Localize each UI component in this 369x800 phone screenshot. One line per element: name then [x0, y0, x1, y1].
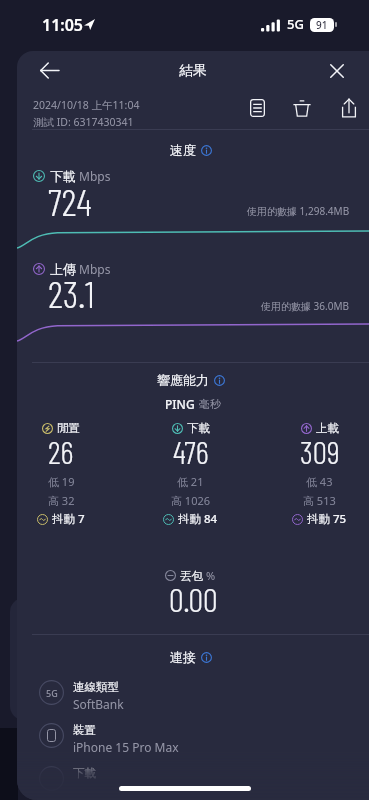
staticText: 高 32 [48, 493, 75, 508]
staticText: Mbps [79, 168, 111, 184]
staticText: 5G [46, 687, 58, 699]
staticText: 下載 [50, 168, 76, 184]
staticText: 476 [173, 432, 209, 470]
button[interactable]: 5G [39, 679, 369, 717]
staticText: 309 [300, 432, 340, 470]
button[interactable]: 裝置 [39, 722, 369, 760]
staticText: 抖動 75 [307, 511, 347, 527]
staticText: 結果 [179, 62, 207, 80]
staticText: 測試 ID: 6317430341 [33, 115, 134, 129]
staticText: 連接 [170, 649, 196, 665]
staticText: 724 [48, 178, 92, 224]
staticText: 低 21 [177, 474, 204, 489]
staticText: 裝置 [73, 723, 96, 737]
button[interactable]: Share [338, 95, 360, 119]
staticText: Mbps [79, 261, 111, 277]
staticText: 0.00 [169, 579, 218, 619]
staticText: 速度 [170, 142, 196, 158]
staticText: 抖動 7 [52, 511, 85, 527]
staticText: 毫秒 [199, 397, 221, 411]
staticText: iPhone 15 Pro Max [73, 739, 179, 755]
staticText: 丟包 [180, 569, 203, 583]
staticText: % [206, 568, 216, 583]
staticText: 2024/10/18 上午11:04 [33, 98, 140, 112]
staticText: 5G [287, 15, 304, 33]
staticText: 上載 [316, 421, 339, 435]
staticText: 下載 [187, 421, 210, 435]
button[interactable]: Close [327, 61, 346, 80]
button[interactable]: Details [246, 96, 268, 120]
staticText: 高 513 [303, 493, 336, 508]
staticText: 低 43 [306, 474, 333, 489]
staticText: 連線類型 [73, 680, 119, 694]
staticText: 26 [48, 432, 74, 470]
staticText: 響應能力 [157, 372, 209, 388]
staticText: 使用的數據 36.0MB [261, 299, 350, 313]
staticText: 高 1026 [171, 493, 211, 508]
staticText: 下載 [73, 766, 96, 780]
staticText: 閒置 [57, 421, 80, 435]
staticText: 91 [316, 18, 328, 32]
button[interactable]: Back [38, 59, 60, 81]
staticText: 上傳 [50, 261, 76, 277]
staticText: 低 19 [48, 474, 75, 489]
button[interactable]: Delete [291, 96, 313, 120]
staticText: 23.1 [48, 270, 95, 316]
staticText: 11:05 [42, 14, 84, 36]
button[interactable]: 下載 [39, 765, 369, 800]
staticText: PING [165, 396, 195, 412]
staticText: SoftBank [73, 696, 124, 712]
staticText: 使用的數據 1,298.4MB [247, 204, 350, 218]
staticText: 抖動 84 [178, 511, 218, 527]
